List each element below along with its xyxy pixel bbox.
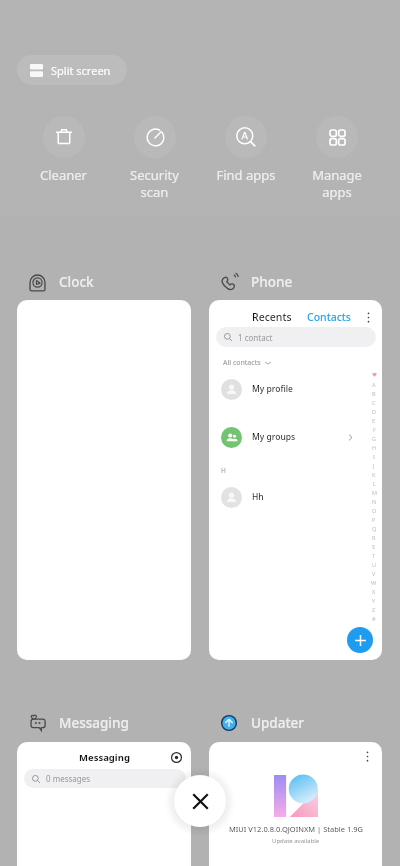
staticText: My groups xyxy=(252,431,296,443)
staticText: X xyxy=(372,588,376,595)
staticText: O xyxy=(372,507,377,514)
button[interactable]: 0 messages xyxy=(24,769,186,788)
staticText: Recents xyxy=(252,310,292,324)
button[interactable]: All contacts xyxy=(221,356,273,370)
staticText: MIUI V12.0.8.0.QJOINXM | Stable 1.9G xyxy=(229,824,363,834)
staticText: My profile xyxy=(252,383,293,395)
button[interactable]: Find apps xyxy=(200,112,291,188)
button[interactable]: Cleaner xyxy=(18,112,109,188)
button[interactable]: Messaging xyxy=(17,713,135,733)
staticText: Clock xyxy=(59,273,94,291)
staticText: L xyxy=(373,480,376,487)
staticText: Updater xyxy=(251,714,305,732)
staticText: H xyxy=(372,444,377,451)
staticText: Hh xyxy=(252,491,264,503)
staticText: Phone xyxy=(251,273,293,291)
staticText: Y xyxy=(372,597,376,604)
staticText: T xyxy=(372,552,376,559)
staticText: B xyxy=(372,390,376,397)
staticText: M xyxy=(372,489,377,496)
staticText: C xyxy=(372,399,376,406)
staticText: Manage apps xyxy=(312,166,362,201)
button[interactable]: Recents xyxy=(249,307,295,327)
staticText: I xyxy=(373,453,375,460)
button[interactable]: Contacts xyxy=(304,307,354,327)
staticText: E xyxy=(372,417,376,424)
staticText: J xyxy=(373,462,375,469)
staticText: Messaging xyxy=(59,714,129,732)
button[interactable]: Settings xyxy=(168,749,184,765)
staticText: Find apps xyxy=(216,166,276,184)
button[interactable]: Messaging xyxy=(17,742,191,866)
button[interactable]: Split screen xyxy=(17,55,127,85)
staticText: K xyxy=(372,471,376,478)
button[interactable]: 1 contact xyxy=(216,327,376,347)
button[interactable]: More options xyxy=(359,748,375,764)
staticText: F xyxy=(373,426,376,433)
button[interactable]: Clock xyxy=(17,272,100,292)
staticText: U xyxy=(372,561,377,568)
staticText: Cleaner xyxy=(40,166,87,184)
staticText: Split screen xyxy=(51,63,111,78)
button[interactable]: Close all xyxy=(174,775,226,827)
staticText: All contacts xyxy=(223,358,261,368)
staticText: G xyxy=(372,435,377,442)
staticText: D xyxy=(372,408,377,415)
button[interactable]: Recents xyxy=(209,300,382,660)
button[interactable]: Hh xyxy=(209,486,382,508)
staticText: R xyxy=(372,534,376,541)
staticText: # xyxy=(372,615,376,622)
staticText: N xyxy=(372,498,377,505)
button[interactable]: Add contact xyxy=(347,627,373,653)
button[interactable]: More options xyxy=(361,310,375,324)
staticText: Q xyxy=(372,525,377,532)
button[interactable]: My groups xyxy=(209,426,382,448)
staticText: P xyxy=(372,516,376,523)
staticText: 0 messages xyxy=(46,773,91,784)
staticText: Update available xyxy=(272,837,320,845)
button[interactable]: Updater xyxy=(209,713,311,733)
button[interactable]: Security scan xyxy=(109,112,200,205)
staticText: V xyxy=(372,570,376,577)
staticText: S xyxy=(372,543,376,550)
staticText: A xyxy=(372,381,376,388)
button[interactable]: Manage apps xyxy=(291,112,382,205)
staticText: Contacts xyxy=(307,310,351,324)
staticText: Z xyxy=(372,606,376,613)
button[interactable]: My profile xyxy=(209,378,382,400)
staticText: 1 contact xyxy=(238,332,273,343)
staticText: Messaging xyxy=(79,751,130,764)
button[interactable]: More options xyxy=(209,742,382,866)
staticText: H xyxy=(221,466,226,475)
staticText: W xyxy=(371,579,377,586)
staticText: Security scan xyxy=(130,166,179,201)
button[interactable]: Phone xyxy=(209,272,299,292)
